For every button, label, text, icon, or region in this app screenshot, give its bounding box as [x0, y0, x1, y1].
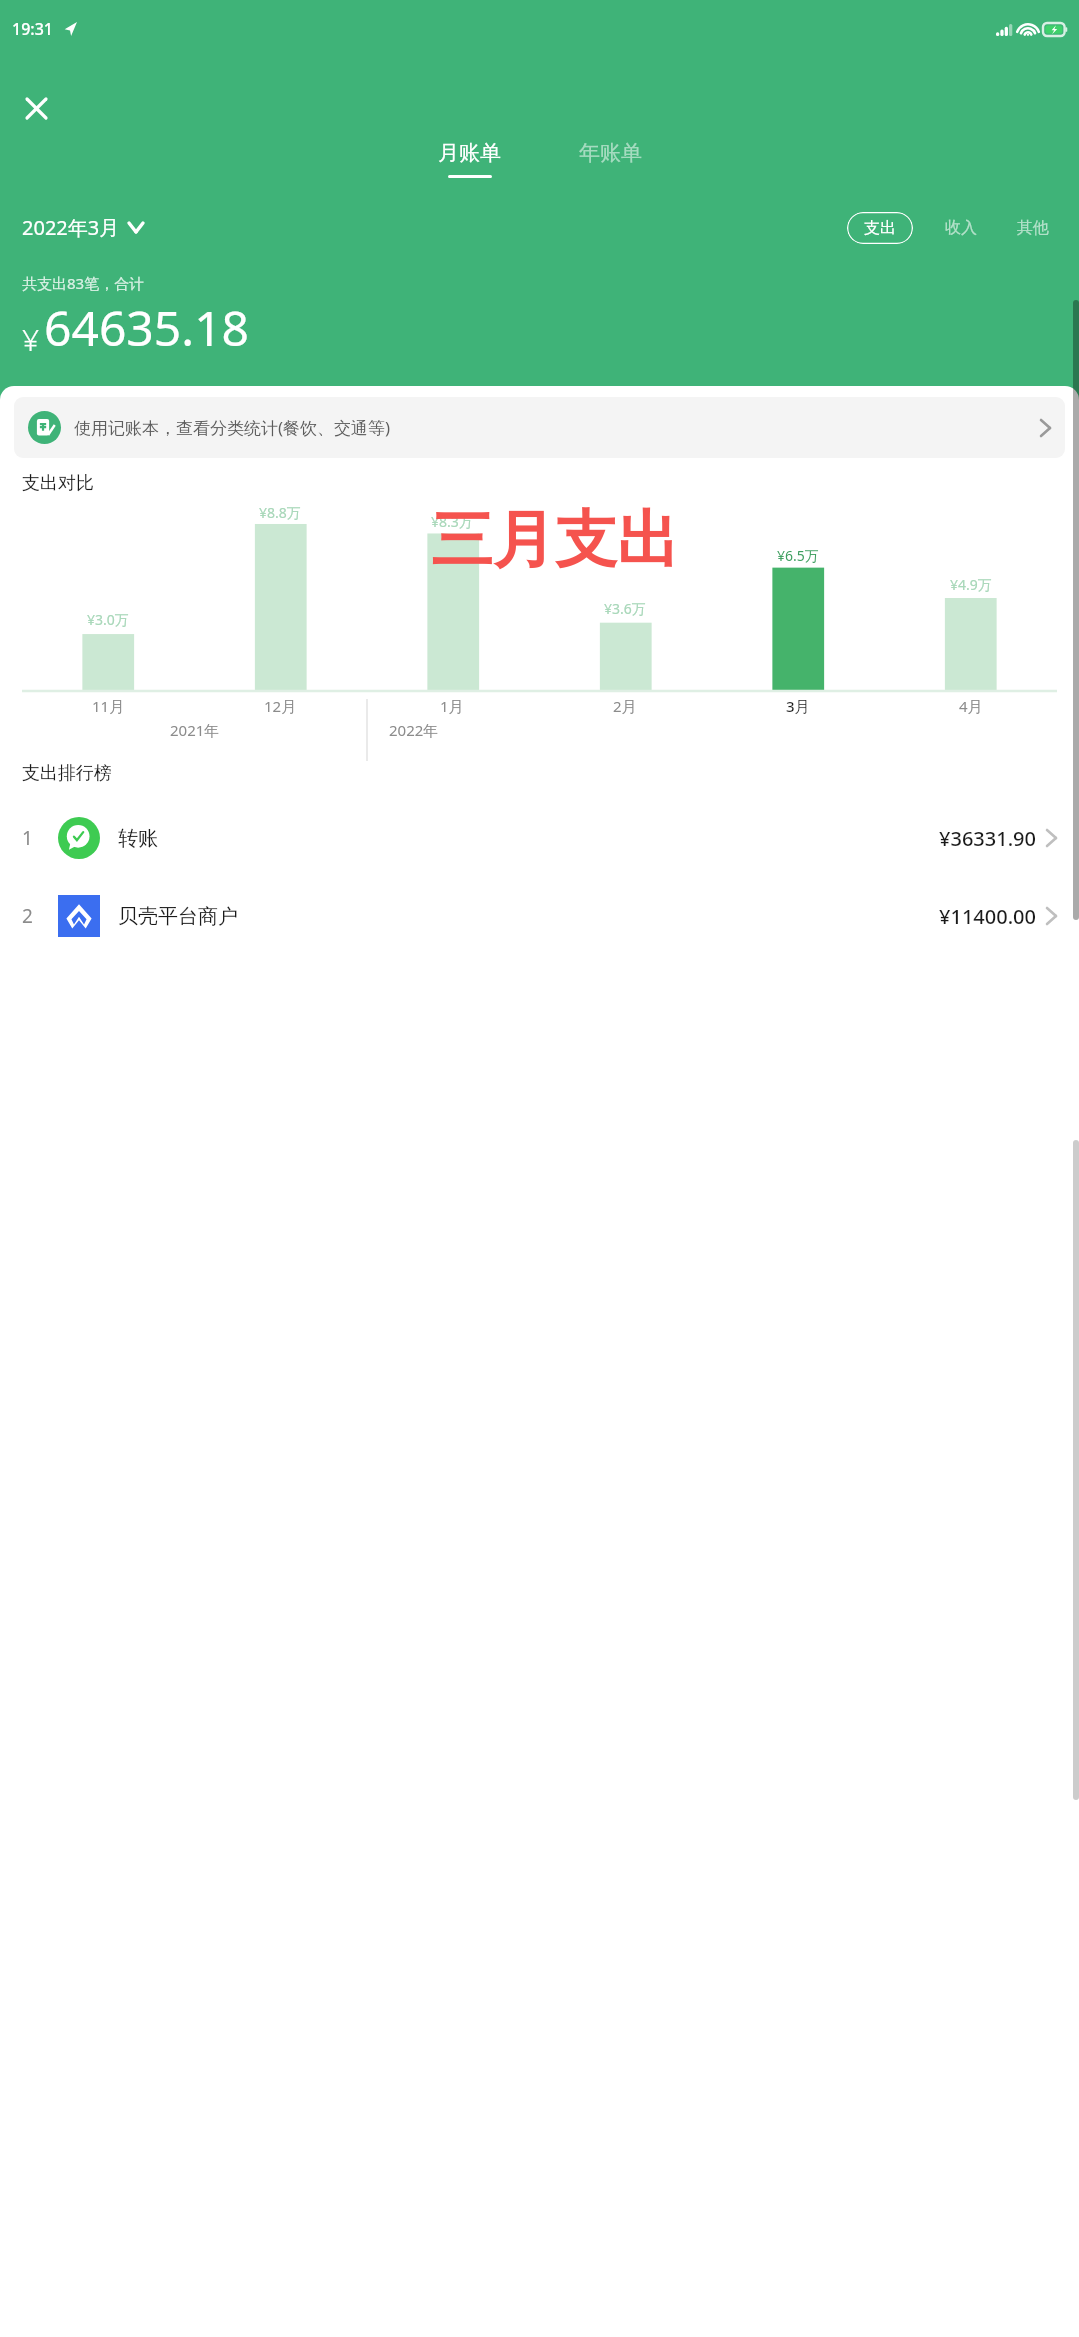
- staticText: 收入: [945, 218, 977, 238]
- staticText: ¥36331.90: [939, 825, 1036, 852]
- staticText: 12月: [264, 696, 297, 716]
- staticText: ¥3.6万: [604, 599, 646, 618]
- staticText: 年账单: [579, 140, 642, 166]
- staticText: 19:31: [12, 18, 53, 40]
- staticText: 贝壳平台商户: [118, 904, 238, 929]
- staticText: 2021年: [170, 720, 220, 740]
- staticText: ¥8.8万: [259, 503, 301, 522]
- staticText: 2022年3月: [22, 214, 120, 241]
- staticText: ¥8.3万: [431, 512, 473, 531]
- staticText: ¥4.9万: [950, 575, 992, 594]
- staticText: ¥3.0万: [87, 610, 129, 629]
- button[interactable]: 收入: [937, 212, 985, 244]
- staticText: 支出: [864, 218, 896, 238]
- staticText: 支出对比: [22, 472, 94, 495]
- staticText: 11月: [92, 696, 125, 716]
- staticText: 1月: [440, 696, 464, 716]
- staticText: 64635.18: [44, 295, 250, 360]
- staticText: 2月: [613, 696, 637, 716]
- staticText: 支出排行榜: [22, 762, 112, 785]
- button[interactable]: 使用记账本，查看分类统计(餐饮、交通等): [14, 397, 1065, 458]
- staticText: 使用记账本，查看分类统计(餐饮、交通等): [74, 416, 391, 439]
- button[interactable]: 月账单: [424, 136, 515, 182]
- staticText: 转账: [118, 826, 158, 851]
- button[interactable]: Close: [14, 86, 58, 130]
- button[interactable]: 2022年3月: [22, 210, 143, 245]
- staticText: 4月: [959, 696, 983, 716]
- staticText: 月账单: [438, 140, 501, 166]
- button[interactable]: 2: [0, 891, 1079, 941]
- button[interactable]: 年账单: [565, 136, 656, 182]
- staticText: ¥11400.00: [939, 903, 1036, 930]
- staticText: 共支出83笔，合计: [22, 273, 145, 293]
- staticText: 2: [22, 903, 58, 929]
- button[interactable]: 1: [0, 813, 1079, 863]
- button[interactable]: 其他: [1009, 212, 1057, 244]
- staticText: ¥6.5万: [777, 546, 819, 565]
- staticText: 三月支出: [431, 501, 679, 579]
- staticText: ¥: [22, 319, 40, 360]
- staticText: 3月: [786, 696, 810, 716]
- staticText: 1: [22, 825, 58, 851]
- button[interactable]: 支出: [847, 212, 913, 244]
- staticText: 其他: [1017, 218, 1049, 238]
- staticText: 2022年: [389, 720, 439, 740]
